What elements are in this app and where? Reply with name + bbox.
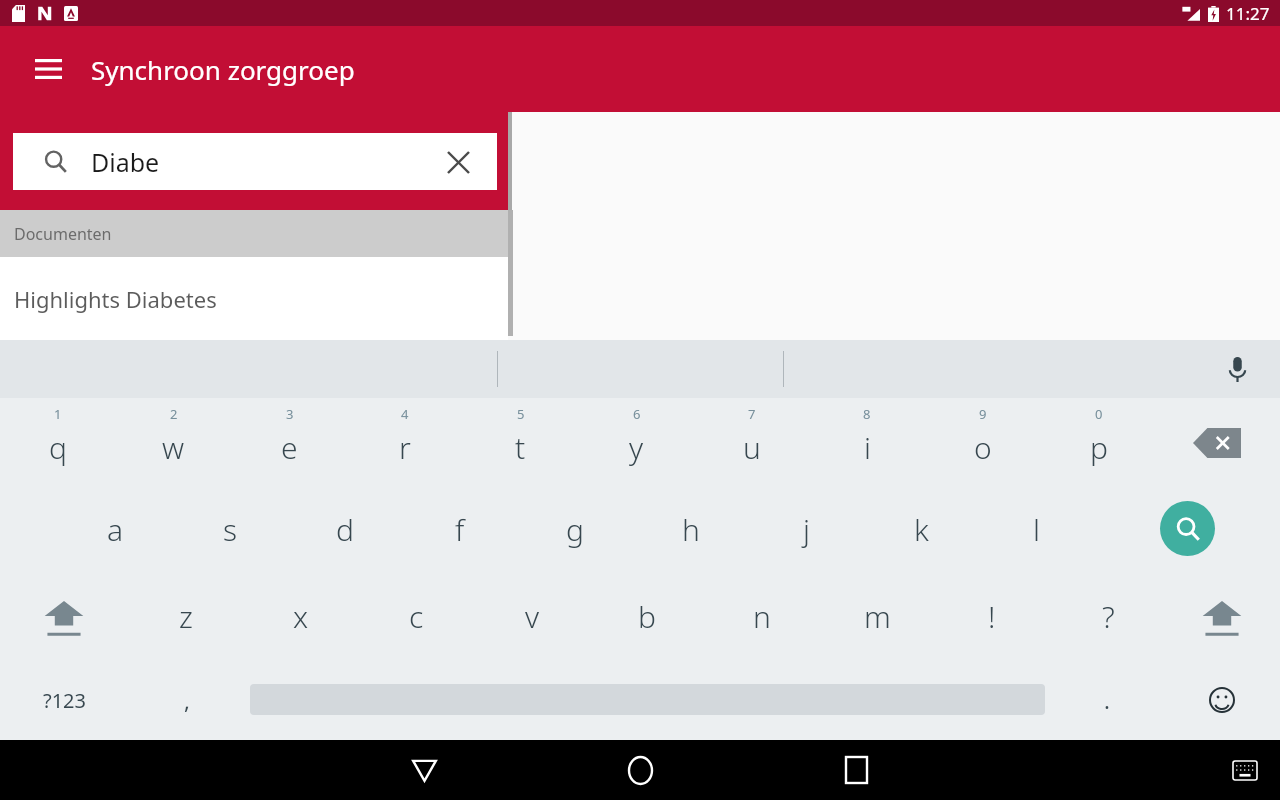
button[interactable]: Open navigation menu <box>26 47 70 91</box>
staticText: r <box>399 427 411 468</box>
button[interactable]: n <box>710 588 814 644</box>
button[interactable]: ?123 <box>22 675 107 725</box>
button[interactable]: Highlights Diabetes <box>0 257 508 340</box>
staticText: s <box>223 509 238 550</box>
staticText: y <box>629 427 644 468</box>
button[interactable]: c <box>364 588 468 644</box>
staticText: 11:27 <box>1226 2 1270 25</box>
button[interactable]: Backspace <box>1182 415 1252 471</box>
button[interactable]: 0 <box>1047 402 1151 476</box>
button[interactable]: g <box>523 501 627 557</box>
button[interactable]: k <box>869 501 973 557</box>
staticText: 1 <box>54 405 62 423</box>
button[interactable]: Back <box>400 740 448 800</box>
staticText: e <box>281 427 298 468</box>
button[interactable]: z <box>134 588 238 644</box>
staticText: i <box>864 427 871 468</box>
button[interactable]: 3 <box>237 402 341 476</box>
staticText: k <box>914 509 929 550</box>
staticText: p <box>1090 427 1108 468</box>
button[interactable]: 1 <box>6 402 110 476</box>
button[interactable]: 4 <box>353 402 457 476</box>
button[interactable]: j <box>754 501 858 557</box>
staticText: w <box>162 427 185 468</box>
staticText: u <box>743 427 761 468</box>
button[interactable]: x <box>249 588 353 644</box>
button[interactable]: h <box>639 501 743 557</box>
button[interactable]: Change keyboard <box>1222 740 1268 800</box>
button[interactable]: 8 <box>815 402 919 476</box>
staticText: f <box>455 509 465 550</box>
button[interactable]: Search <box>13 133 497 190</box>
staticText: g <box>566 509 584 550</box>
button[interactable]: m <box>825 588 929 644</box>
button[interactable]: Voice input <box>1216 348 1258 390</box>
button[interactable]: v <box>480 588 584 644</box>
staticText: ? <box>1102 596 1115 637</box>
button[interactable]: Emoji <box>1196 675 1248 725</box>
button[interactable]: s <box>178 501 282 557</box>
button[interactable]: Search <box>1160 501 1215 556</box>
button[interactable]: ? <box>1056 588 1160 644</box>
staticText: 8 <box>863 405 871 423</box>
button[interactable]: Home <box>616 740 664 800</box>
button[interactable]: f <box>408 501 512 557</box>
button[interactable]: Clear search <box>441 145 475 179</box>
staticText: h <box>682 509 700 550</box>
button[interactable]: Recent apps <box>832 740 880 800</box>
button[interactable]: . <box>1072 675 1142 725</box>
staticText: o <box>974 427 992 468</box>
staticText: Documenten <box>14 223 112 245</box>
staticText: x <box>293 596 309 637</box>
staticText: 0 <box>1095 405 1103 423</box>
button[interactable]: 5 <box>468 402 572 476</box>
button[interactable]: 6 <box>584 402 688 476</box>
staticText: ?123 <box>43 687 86 714</box>
staticText: l <box>1033 509 1040 550</box>
staticText: c <box>409 596 424 637</box>
staticText: 7 <box>748 405 756 423</box>
staticText: t <box>515 427 526 468</box>
staticText: Diabe <box>91 145 160 179</box>
staticText: b <box>638 596 656 637</box>
button[interactable]: Shift <box>30 590 98 646</box>
other: Search <box>44 150 67 173</box>
button[interactable]: 9 <box>931 402 1035 476</box>
staticText: . <box>1104 685 1110 715</box>
button[interactable]: 2 <box>121 402 225 476</box>
staticText: a <box>107 509 124 550</box>
button[interactable]: Shift <box>1188 590 1256 646</box>
staticText: , <box>184 685 190 715</box>
staticText: v <box>525 596 540 637</box>
staticText: 5 <box>517 405 525 423</box>
staticText: 2 <box>170 405 178 423</box>
button[interactable]: a <box>63 501 167 557</box>
staticText: j <box>803 509 810 550</box>
button[interactable]: l <box>984 501 1088 557</box>
staticText: q <box>49 427 67 468</box>
staticText: Synchroon zorggroep <box>91 52 355 87</box>
staticText: n <box>753 596 771 637</box>
staticText: ! <box>988 596 996 637</box>
staticText: d <box>336 509 354 550</box>
staticText: 3 <box>286 405 294 423</box>
staticText: 9 <box>979 405 987 423</box>
button[interactable]: d <box>293 501 397 557</box>
button[interactable]: b <box>595 588 699 644</box>
staticText: Highlights Diabetes <box>14 284 217 314</box>
staticText: m <box>864 596 891 637</box>
button[interactable]: ! <box>940 588 1044 644</box>
button[interactable]: , <box>152 675 222 725</box>
staticText: 4 <box>401 405 409 423</box>
staticText: 6 <box>633 405 641 423</box>
staticText: z <box>179 596 193 637</box>
button[interactable]: 7 <box>700 402 804 476</box>
